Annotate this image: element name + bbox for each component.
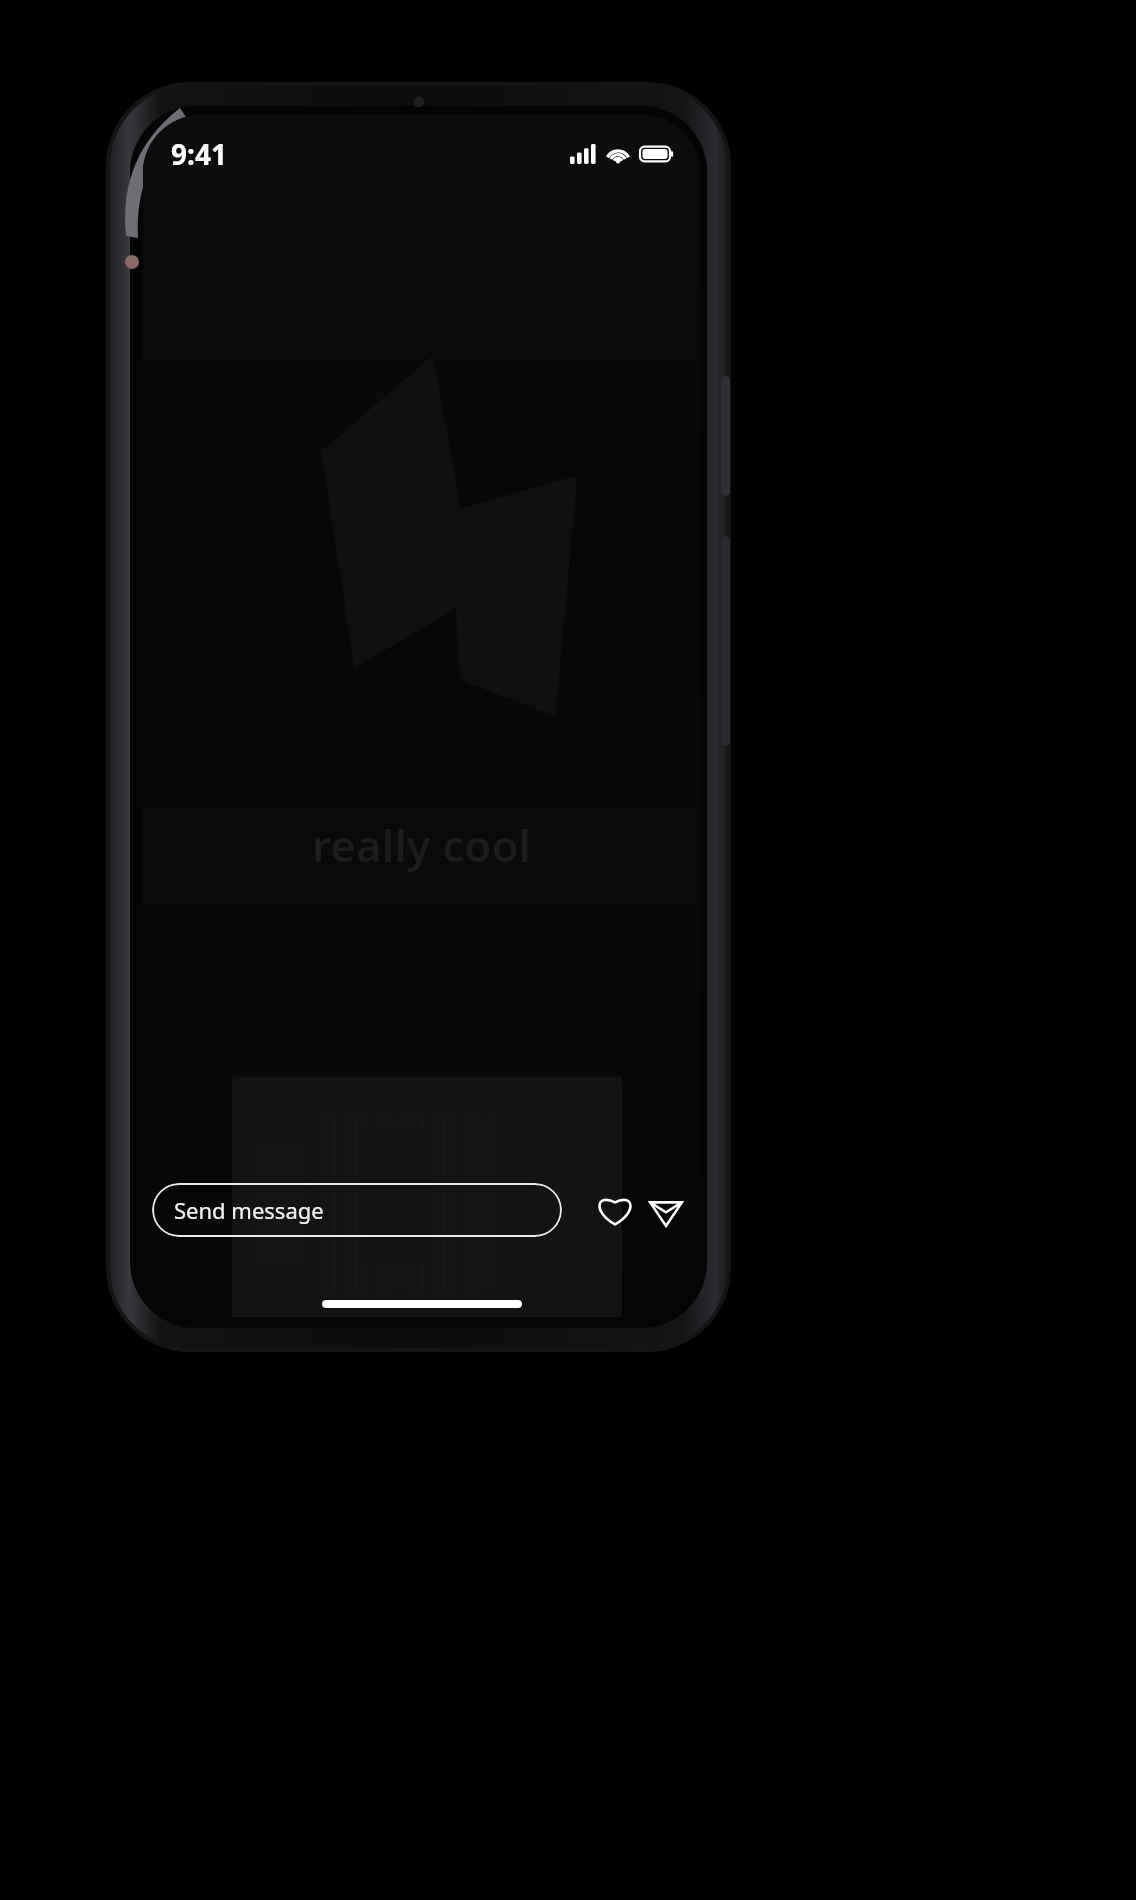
button[interactable]: Send message [152,1183,562,1237]
staticText: 9:41 [171,135,227,173]
button[interactable]: Send [648,1183,684,1237]
button[interactable]: Like [588,1183,642,1237]
staticText: really cool [143,815,700,875]
staticText: Send message [174,1195,324,1225]
